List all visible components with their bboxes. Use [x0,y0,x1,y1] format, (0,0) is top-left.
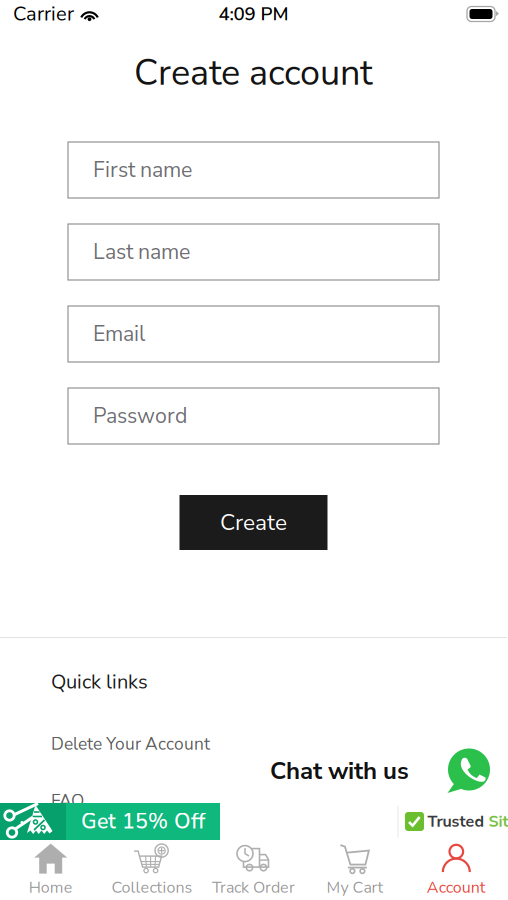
staticText: Create account [134,48,373,97]
staticText: Trusted [427,811,484,832]
staticText: Chat with us [270,755,409,787]
staticText: Account [427,877,486,898]
staticText: FAQ [51,789,84,813]
button[interactable]: Password [68,388,439,444]
staticText: Create [220,507,287,538]
staticText: Site [488,811,508,832]
staticText: Password [93,401,187,431]
button[interactable]: Create [179,495,327,550]
staticText: Carrier [13,0,74,28]
staticText: Last name [93,237,190,267]
button[interactable]: Collections [101,842,203,898]
button[interactable]: Get 15% Off [0,803,220,840]
staticText: 4:09 PM [218,1,288,27]
staticText: Delete Your Account [51,732,210,756]
staticText: Track Order [212,877,295,898]
button[interactable]: Chat on WhatsApp [444,746,494,796]
button[interactable]: First name [68,142,439,198]
staticText: First name [93,155,192,185]
button[interactable]: Delete Your Account [51,733,456,755]
staticText: Email [93,319,145,349]
button[interactable]: Account [406,842,507,898]
button[interactable]: Track Order [203,842,304,898]
button[interactable]: Email [68,306,439,362]
staticText: Collections [112,877,193,898]
staticText: Get 15% Off [81,807,205,836]
button[interactable]: FAQ [51,790,456,812]
staticText: Home [29,877,73,898]
button[interactable]: My Cart [304,842,406,898]
button[interactable]: Home [0,842,101,898]
staticText: Quick links [51,668,148,696]
staticText: My Cart [326,877,383,898]
button[interactable]: Last name [68,224,439,280]
